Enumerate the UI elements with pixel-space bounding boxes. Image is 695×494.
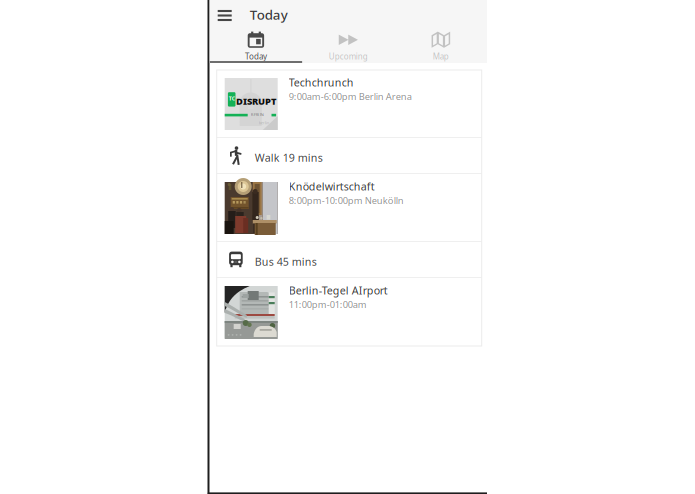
button[interactable]: Upcoming [302,28,394,66]
staticText: Berlin-Tegel AIrport [289,283,388,298]
staticText: BERLIN [251,112,264,117]
staticText: berlin [259,120,269,125]
staticText: Today [245,51,267,62]
staticText: 9:00am-6:00pm Berlin Arena [289,90,412,103]
staticText: 11:00pm-01:00am [289,298,367,311]
button[interactable]: Map [395,28,487,66]
staticText: TC [229,95,235,102]
button[interactable]: Menu [210,0,241,28]
button[interactable]: TC [217,70,482,137]
staticText: Knödelwirtschaft [289,179,375,194]
staticText: Techchrunch [289,75,354,90]
staticText: DISRUPT [236,95,277,107]
staticText: Upcoming [329,51,368,62]
button[interactable]: Berlin-Tegel AIrport [217,278,482,346]
staticText: 8:00pm-10:00pm Neukölln [289,194,404,207]
button[interactable]: Walk 19 mins [217,138,482,173]
staticText: Walk 19 mins [255,150,323,165]
staticText: Today [250,6,288,23]
staticText: Map [433,51,449,62]
staticText: Bus 45 mins [255,254,317,269]
button[interactable]: Bus 45 mins [217,242,482,277]
button[interactable]: Today [210,28,302,66]
button[interactable]: Knödelwirtschaft [217,174,482,241]
